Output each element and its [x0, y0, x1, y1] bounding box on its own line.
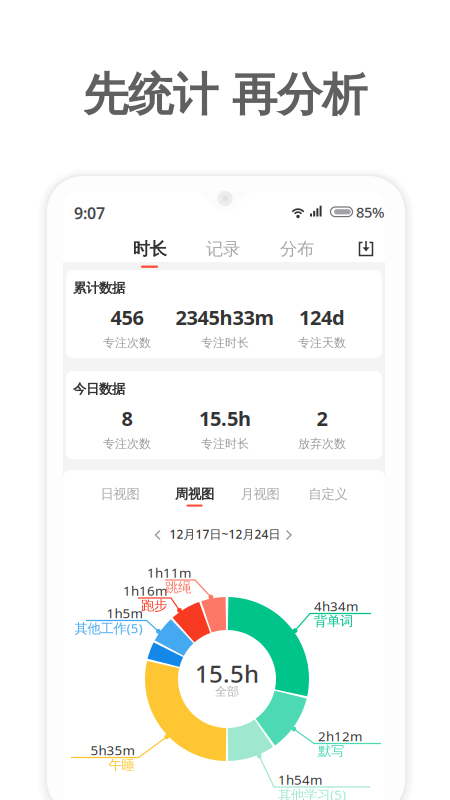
staticText: 85%: [356, 202, 384, 222]
staticText: 默写: [318, 743, 344, 759]
button[interactable]: 月视图: [233, 486, 287, 510]
staticText: 全部: [215, 684, 239, 699]
staticText: 2: [316, 405, 327, 431]
staticText: 专注时长: [201, 335, 249, 350]
staticText: 自定义: [308, 486, 347, 502]
staticText: 月视图: [240, 486, 279, 502]
staticText: 专注天数: [298, 335, 346, 350]
staticText: 累计数据: [73, 280, 125, 296]
staticText: 先统计 再分析: [83, 67, 367, 123]
staticText: 放弃次数: [298, 436, 346, 451]
staticText: 跳绳: [165, 579, 191, 596]
staticText: 背单词: [314, 613, 353, 629]
staticText: 15.5h: [199, 405, 251, 431]
staticText: 跑步: [141, 597, 167, 614]
staticText: 1h5m: [106, 604, 142, 622]
staticText: 其他工作(5): [74, 619, 142, 637]
staticText: 124d: [299, 304, 345, 330]
staticText: 专注时长: [201, 436, 249, 451]
staticText: 15.5h: [195, 658, 259, 689]
staticText: 1h54m: [278, 771, 322, 788]
staticText: 分布: [280, 238, 314, 260]
staticText: 12月17日~12月24日: [169, 526, 280, 542]
staticText: 记录: [206, 238, 240, 260]
button[interactable]: 分布: [267, 239, 327, 273]
button[interactable]: 时长: [119, 239, 179, 273]
button[interactable]: 记录: [193, 239, 253, 273]
button[interactable]: Next week: [277, 523, 301, 547]
staticText: 今日数据: [73, 381, 125, 397]
staticText: 午睡: [108, 757, 134, 773]
staticText: 456: [110, 304, 143, 330]
button[interactable]: 周视图: [167, 486, 221, 510]
staticText: 5h35m: [90, 741, 134, 759]
button[interactable]: Export: [349, 232, 383, 266]
staticText: 4h34m: [314, 597, 358, 615]
button[interactable]: 日视图: [93, 486, 147, 510]
staticText: 周视图: [175, 486, 214, 502]
button[interactable]: 自定义: [301, 486, 355, 510]
staticText: 其他学习(5): [278, 786, 346, 800]
staticText: 专注次数: [103, 335, 151, 350]
staticText: 专注次数: [103, 436, 151, 451]
staticText: 1h16m: [123, 582, 167, 599]
staticText: 8: [121, 405, 132, 431]
staticText: 日视图: [100, 486, 139, 502]
staticText: 9:07: [74, 202, 105, 224]
staticText: 时长: [132, 238, 166, 260]
staticText: 2h12m: [318, 727, 362, 745]
staticText: 1h11m: [147, 564, 191, 581]
button[interactable]: Previous week: [146, 523, 170, 547]
staticText: 2345h33m: [175, 304, 274, 330]
